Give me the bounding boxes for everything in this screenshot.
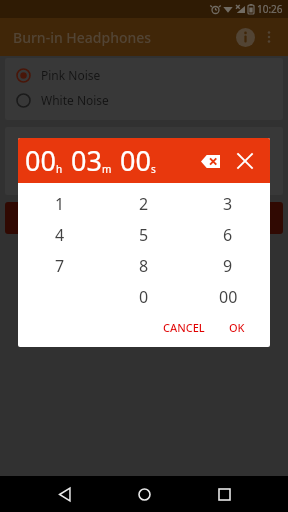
staticText: h	[56, 162, 63, 176]
button[interactable]: White Noise	[16, 92, 283, 108]
button[interactable]: More options	[257, 25, 281, 49]
staticText: 7	[55, 255, 65, 277]
staticText: CANCEL	[163, 320, 205, 335]
button[interactable]: 6	[186, 219, 270, 250]
button[interactable]: Home	[128, 478, 160, 510]
staticText: 03	[71, 142, 102, 179]
staticText: 9	[223, 255, 233, 277]
staticText: 00	[120, 142, 151, 179]
button[interactable]: 7	[18, 250, 102, 281]
button[interactable]: Close	[231, 147, 259, 175]
button[interactable]: Pink Noise	[16, 67, 283, 83]
staticText: 4	[55, 224, 65, 246]
staticText: OK	[229, 320, 245, 335]
button[interactable]: Info	[232, 24, 258, 50]
button[interactable]: Backspace	[196, 147, 224, 175]
staticText: 00	[219, 286, 238, 308]
staticText: Pink Noise	[41, 67, 101, 83]
button[interactable]: CANCEL	[156, 315, 212, 340]
button[interactable]: 1	[18, 188, 102, 219]
button[interactable]: 00	[186, 281, 270, 312]
button[interactable]: Back	[48, 478, 80, 510]
staticText: 0	[139, 286, 149, 308]
staticText: Burn-in Headphones	[13, 28, 152, 47]
button[interactable]: 2	[102, 188, 186, 219]
button[interactable]	[5, 202, 283, 234]
staticText: 8	[139, 255, 149, 277]
button[interactable]: Recents	[208, 478, 240, 510]
staticText: White Noise	[41, 92, 109, 108]
staticText: m	[102, 162, 112, 176]
button[interactable]: 8	[102, 250, 186, 281]
staticText: s	[151, 162, 156, 176]
button[interactable]: 9	[186, 250, 270, 281]
button[interactable]: 5	[102, 219, 186, 250]
staticText: 6	[223, 224, 233, 246]
staticText: 00	[25, 142, 56, 179]
staticText: 5	[139, 224, 149, 246]
staticText: 2	[139, 193, 149, 215]
button[interactable]: 0	[102, 281, 186, 312]
button[interactable]: 3	[186, 188, 270, 219]
staticText: 10:26	[257, 2, 283, 16]
button[interactable]: 4	[18, 219, 102, 250]
staticText: 1	[55, 193, 65, 215]
button[interactable]: OK	[222, 315, 252, 340]
staticText: 3	[223, 193, 233, 215]
